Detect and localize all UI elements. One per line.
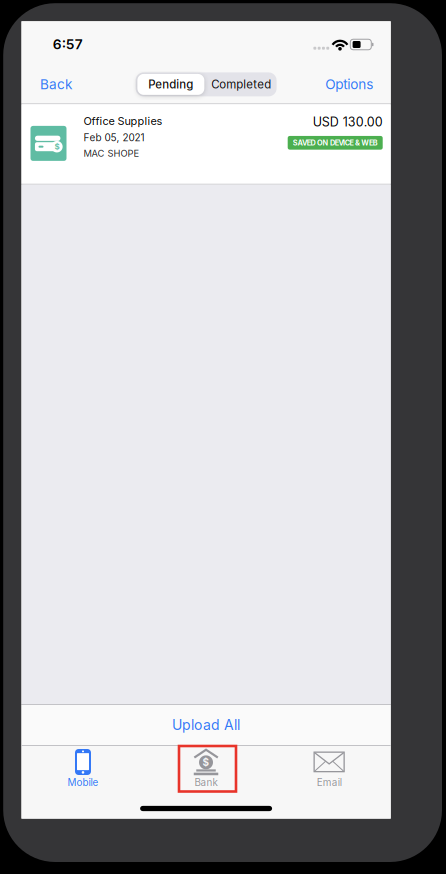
button[interactable]: Options (325, 76, 373, 93)
staticText: Bank (195, 776, 218, 788)
button[interactable]: Pending (136, 72, 206, 96)
staticText: Completed (211, 77, 271, 91)
staticText: USD 130.00 (313, 114, 383, 129)
staticText: Feb 05, 2021 (83, 131, 144, 144)
button[interactable]: $ (145, 745, 268, 797)
staticText: MAC SHOPE (83, 148, 139, 159)
button[interactable]: $ (21, 104, 391, 184)
staticText: Back (40, 76, 72, 93)
staticText: Pending (148, 77, 193, 91)
staticText: $ (202, 756, 209, 768)
staticText: Upload All (172, 716, 240, 733)
button[interactable]: Completed (206, 72, 277, 96)
staticText: SAVED ON DEVICE & WEB (293, 138, 378, 147)
staticText: Options (325, 76, 373, 93)
button[interactable]: Mobile (21, 745, 145, 797)
staticText: 6:57 (53, 36, 83, 52)
button[interactable]: Email (268, 745, 391, 797)
staticText: Email (317, 776, 342, 788)
staticText: Office Supplies (83, 114, 162, 127)
button[interactable]: Upload All (21, 705, 391, 745)
staticText: Mobile (67, 776, 98, 788)
button[interactable]: Back (40, 76, 72, 93)
staticText: $ (54, 142, 59, 152)
